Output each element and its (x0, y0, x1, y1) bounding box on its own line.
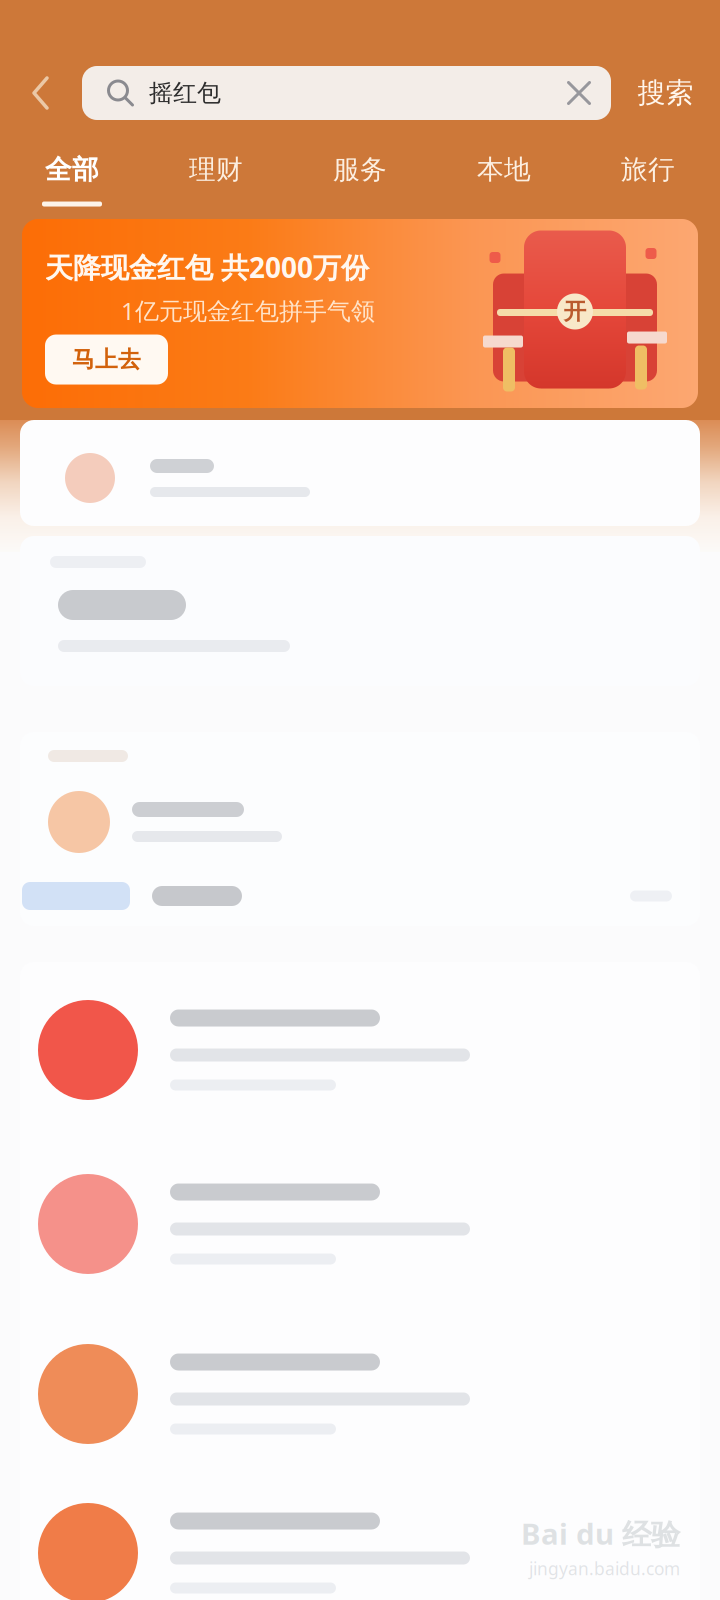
button[interactable] (20, 1310, 700, 1478)
staticText: 开 (563, 298, 586, 325)
button[interactable] (20, 420, 700, 526)
button[interactable]: 全部 (0, 136, 144, 219)
button[interactable] (20, 776, 700, 868)
button[interactable]: 理财 (144, 136, 288, 219)
staticText: 旅行 (621, 153, 675, 186)
button[interactable]: Back (0, 63, 82, 123)
staticText: 本地 (477, 153, 531, 186)
button[interactable] (20, 1478, 700, 1600)
staticText: 全部 (45, 153, 99, 186)
staticText: 摇红包 (149, 78, 221, 108)
staticText: jingyan.baidu.com (529, 1557, 680, 1580)
staticText: 马上去 (72, 346, 141, 373)
button[interactable]: Clear search (547, 66, 611, 120)
staticText: 搜索 (637, 76, 693, 110)
staticText: 理财 (189, 153, 243, 186)
staticText: 1亿元现金红包拼手气领 (121, 295, 375, 327)
button[interactable]: 开 (22, 219, 698, 408)
button[interactable] (20, 1138, 700, 1310)
button[interactable]: 服务 (288, 136, 432, 219)
button[interactable]: 本地 (432, 136, 576, 219)
button[interactable] (20, 962, 700, 1138)
staticText: Bai du 经验 (521, 1514, 680, 1553)
button[interactable]: 旅行 (576, 136, 720, 219)
staticText: 天降现金红包 共2000万份 (45, 248, 369, 286)
staticText: 服务 (333, 153, 387, 186)
button[interactable]: 搜索 (611, 63, 720, 123)
